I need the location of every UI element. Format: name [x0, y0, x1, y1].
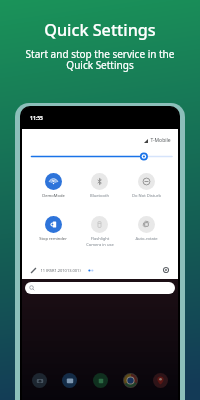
button[interactable]: Auto-rotate [123, 216, 170, 242]
staticText: Do Not Disturb [132, 193, 161, 199]
staticText: Quick Settings [44, 19, 156, 41]
staticText: 11 (RSR1.201013.001) [40, 268, 81, 273]
button[interactable]: App [93, 373, 108, 388]
staticText: 11:55 [30, 115, 43, 122]
button[interactable]: App [32, 373, 47, 388]
button[interactable]: App [153, 373, 168, 388]
staticText: Start and stop the service in the Quick … [0, 47, 200, 72]
staticText: T-Mobile [150, 137, 171, 144]
button[interactable]: Do Not Disturb [123, 173, 170, 199]
button[interactable]: Settings [162, 266, 170, 274]
staticText: Bluetooth [90, 193, 109, 199]
button[interactable]: Search [25, 282, 175, 294]
staticText: Flashlight Camera in use [86, 236, 114, 247]
button[interactable]: App [62, 373, 77, 388]
button[interactable]: DemoMode [30, 173, 76, 199]
button[interactable]: Stop reminder [30, 216, 76, 242]
button[interactable]: Flashlight Camera in use [76, 216, 123, 247]
button[interactable]: App [123, 373, 138, 388]
other: Edit [30, 267, 37, 274]
button[interactable]: Bluetooth [76, 173, 123, 199]
staticText: Stop reminder [39, 236, 67, 242]
staticText: Auto-rotate [135, 236, 158, 242]
staticText: DemoMode [42, 193, 65, 199]
